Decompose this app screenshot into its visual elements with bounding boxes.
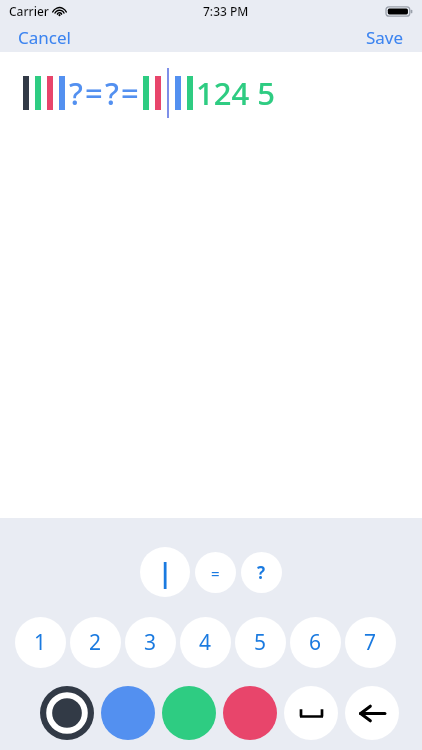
button[interactable]: 2 xyxy=(70,617,121,668)
button[interactable]: | xyxy=(140,547,190,597)
staticText: ? xyxy=(69,72,83,114)
staticText: Cancel xyxy=(18,26,71,48)
button[interactable]: Blue colour xyxy=(101,686,155,740)
staticText: = xyxy=(121,72,139,114)
staticText: 7 xyxy=(364,628,377,657)
button[interactable]: Green colour xyxy=(162,686,216,740)
staticText: 7:33 PM xyxy=(203,3,249,19)
staticText: = xyxy=(85,72,103,114)
button[interactable]: 1 xyxy=(15,617,66,668)
button[interactable]: 4 xyxy=(180,617,231,668)
button[interactable]: ? xyxy=(241,552,282,593)
staticText: 3 xyxy=(144,628,157,657)
button[interactable]: = xyxy=(195,552,236,593)
staticText: Carrier xyxy=(9,3,49,19)
staticText: 4 xyxy=(199,628,212,657)
button[interactable]: Space xyxy=(284,686,338,740)
staticText: 5 xyxy=(254,628,267,657)
staticText: 6 xyxy=(309,628,322,657)
staticText: Save xyxy=(366,26,404,48)
staticText: = xyxy=(211,563,220,583)
button[interactable]: Backspace xyxy=(345,686,399,740)
staticText: ? xyxy=(257,561,266,584)
button[interactable]: 3 xyxy=(125,617,176,668)
button[interactable]: Dark colour xyxy=(40,686,94,740)
button[interactable]: Save xyxy=(348,22,422,52)
button[interactable]: Cancel xyxy=(0,22,89,52)
button[interactable]: Pink colour xyxy=(223,686,277,740)
staticText: 1 xyxy=(34,628,47,657)
button[interactable]: 7 xyxy=(345,617,396,668)
button[interactable]: 6 xyxy=(290,617,341,668)
staticText: 124 5 xyxy=(196,72,275,114)
button[interactable]: 5 xyxy=(235,617,286,668)
staticText: ? xyxy=(105,72,119,114)
staticText: | xyxy=(158,555,173,590)
staticText: 2 xyxy=(89,628,102,657)
